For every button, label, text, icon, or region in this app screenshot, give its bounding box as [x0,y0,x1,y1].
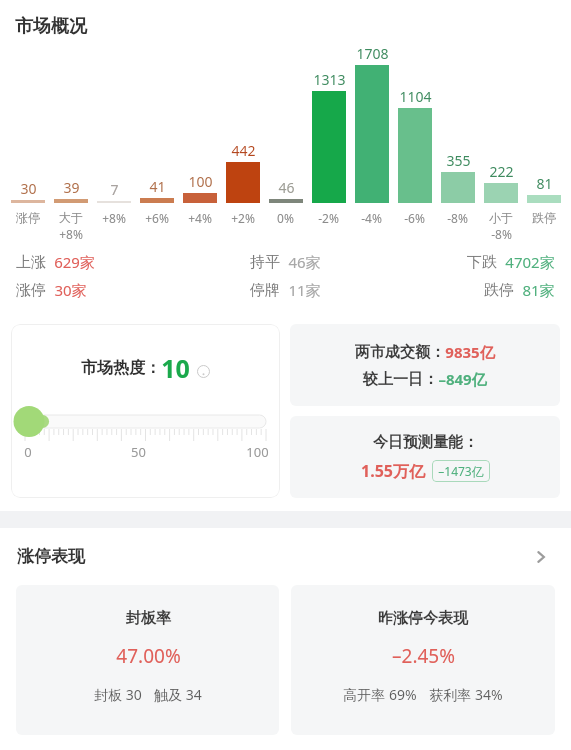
staticText: 封板率 [126,609,171,628]
staticText: –2.45% [392,643,455,669]
staticText: 4702家 [505,252,555,272]
staticText: 持平 [250,253,280,272]
staticText: 10 [161,351,190,385]
staticText: 9835亿 [445,342,495,362]
staticText: 442 [231,141,256,160]
staticText: 81家 [522,280,555,300]
other: View more [532,547,552,567]
staticText: 629家 [54,252,95,272]
other: Help [197,365,210,378]
staticText: 100 [188,172,213,191]
staticText: 市场概况 [15,15,87,38]
staticText: 较上一日： [363,370,438,389]
staticText: –1473亿 [438,463,484,479]
staticText: –849亿 [438,369,487,389]
button[interactable]: 两市成交额： [290,324,560,406]
staticText: 0 [24,443,32,461]
staticText: 30 [20,179,37,198]
staticText: 大于 [59,210,83,225]
staticText: 100 [246,443,269,461]
staticText: 停牌 [250,281,280,300]
staticText: 1708 [356,44,389,63]
staticText: 高开率 69% [343,685,417,704]
staticText: 触及 34 [154,685,202,704]
button[interactable]: 昨涨停今表现 [291,585,555,735]
staticText: 47.00% [116,643,181,669]
staticText: -8% [491,226,512,242]
staticText: 市场热度： [81,358,161,378]
staticText: 355 [446,151,471,170]
staticText: -6% [404,210,425,226]
staticText: +6% [145,210,169,226]
staticText: 81 [536,174,553,193]
staticText: -2% [318,210,339,226]
staticText: -4% [361,210,382,226]
staticText: 涨停 [16,210,40,225]
staticText: 0% [277,210,294,226]
staticText: 涨停表现 [17,546,85,567]
staticText: 1313 [313,70,346,89]
staticText: 涨停 [16,281,46,300]
staticText: 46 [278,178,295,197]
staticText: +2% [231,210,255,226]
staticText: 跌停 [532,210,556,225]
staticText: 封板 30 [94,685,142,704]
staticText: 今日预测量能： [373,433,478,452]
button[interactable]: 涨停表现 [0,528,571,585]
staticText: 30家 [54,280,87,300]
staticText: 获利率 34% [429,685,503,704]
staticText: 两市成交额： [355,343,445,362]
staticText: -8% [447,210,468,226]
button[interactable]: 封板率 [16,585,279,735]
staticText: 小于 [489,210,513,225]
staticText: 39 [63,178,80,197]
button[interactable]: 今日预测量能： [290,416,560,498]
staticText: 昨涨停今表现 [378,609,468,628]
staticText: 50 [131,443,146,461]
staticText: 1.55万亿 [361,460,425,482]
staticText: 跌停 [484,281,514,300]
staticText: 222 [489,162,514,181]
staticText: 上涨 [16,253,46,272]
staticText: +8% [102,210,126,226]
staticText: 1104 [399,87,432,106]
staticText: 11家 [288,280,321,300]
staticText: 7 [110,180,119,199]
staticText: +4% [188,210,212,226]
button[interactable]: 市场热度： [11,324,280,498]
staticText: +8% [59,226,83,242]
staticText: 41 [149,177,166,196]
staticText: 46家 [288,252,321,272]
staticText: 下跌 [467,253,497,272]
